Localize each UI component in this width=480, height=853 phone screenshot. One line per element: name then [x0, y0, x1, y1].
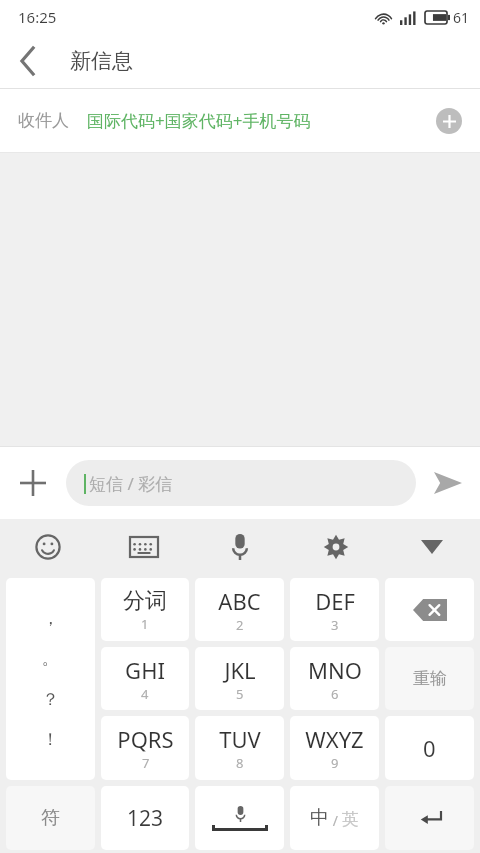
staticText: 2: [236, 616, 244, 634]
button[interactable]: 123: [101, 786, 189, 850]
button[interactable]: Voice input: [192, 519, 288, 575]
staticText: 国际代码+国家代码+手机号码: [87, 109, 311, 132]
staticText: 重输: [413, 668, 447, 689]
staticText: 0: [423, 733, 436, 763]
button[interactable]: Backspace: [385, 578, 474, 641]
button[interactable]: Add contact: [436, 108, 462, 134]
staticText: ，: [42, 608, 59, 629]
staticText: 16:25: [18, 7, 57, 27]
staticText: 英: [342, 809, 359, 830]
staticText: 收件人: [18, 110, 69, 131]
staticText: 9: [331, 754, 339, 772]
staticText: 中: [310, 806, 329, 830]
staticText: ？: [42, 689, 59, 710]
staticText: ABC: [218, 586, 261, 616]
button[interactable]: Enter: [385, 786, 474, 850]
staticText: 符: [41, 806, 60, 830]
button[interactable]: 0: [385, 716, 474, 780]
button[interactable]: 重输: [385, 647, 474, 710]
button[interactable]: Emoji: [0, 519, 96, 575]
button[interactable]: Hide keyboard: [384, 519, 480, 575]
button[interactable]: Attach: [0, 450, 66, 516]
staticText: 短信 / 彩信: [89, 472, 173, 495]
button[interactable]: 分词: [101, 578, 189, 641]
staticText: 3: [331, 616, 339, 634]
button[interactable]: Back: [0, 34, 56, 88]
button[interactable]: MNO: [290, 647, 379, 710]
button[interactable]: 收件人: [0, 89, 480, 152]
staticText: 61: [453, 8, 470, 27]
staticText: 4: [141, 685, 149, 703]
staticText: 6: [331, 685, 339, 703]
staticText: PQRS: [117, 724, 174, 754]
button[interactable]: Settings: [288, 519, 384, 575]
staticText: 1: [141, 615, 149, 633]
button[interactable]: Keyboard layout: [96, 519, 192, 575]
staticText: 7: [142, 754, 150, 772]
button[interactable]: WXYZ: [290, 716, 379, 780]
staticText: WXYZ: [305, 724, 364, 754]
button[interactable]: Space: [195, 786, 284, 850]
button[interactable]: DEF: [290, 578, 379, 641]
button[interactable]: JKL: [195, 647, 284, 710]
staticText: TUV: [219, 724, 261, 754]
button[interactable]: 中英切换: [290, 786, 379, 850]
button[interactable]: Punctuation: [6, 578, 95, 780]
staticText: 新信息: [70, 48, 133, 74]
staticText: DEF: [315, 586, 355, 616]
staticText: 8: [236, 754, 244, 772]
staticText: 5: [236, 685, 244, 703]
button[interactable]: PQRS: [101, 716, 189, 780]
button[interactable]: GHI: [101, 647, 189, 710]
staticText: 123: [127, 804, 164, 833]
staticText: JKL: [224, 655, 256, 685]
button[interactable]: 短信 / 彩信: [66, 460, 416, 506]
staticText: ！: [42, 729, 59, 750]
staticText: GHI: [125, 655, 165, 685]
staticText: 。: [42, 648, 59, 669]
staticText: 分词: [123, 587, 167, 615]
button[interactable]: 符: [6, 786, 95, 850]
staticText: MNO: [308, 655, 362, 685]
button[interactable]: ABC: [195, 578, 284, 641]
button[interactable]: Send: [416, 451, 480, 515]
staticText: /: [329, 811, 342, 830]
button[interactable]: TUV: [195, 716, 284, 780]
